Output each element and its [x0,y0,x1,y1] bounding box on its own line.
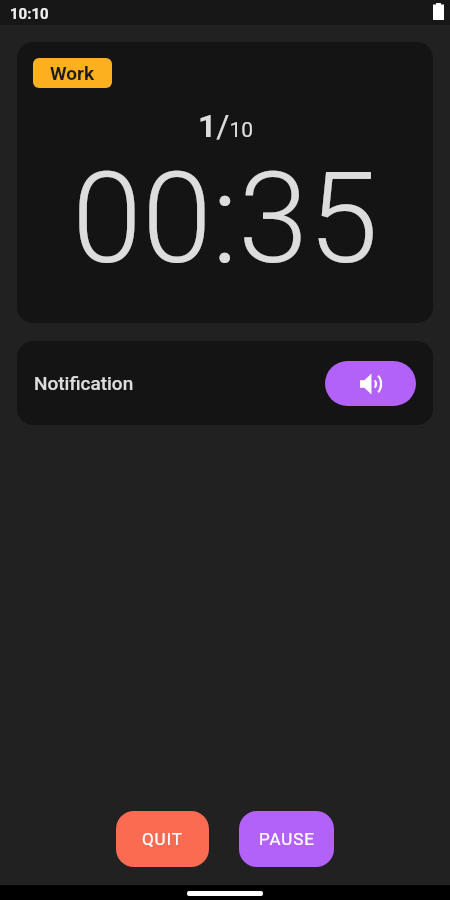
staticText: QUIT [142,829,183,849]
staticText: Notification [34,372,134,394]
staticText: 00:35 [72,145,379,293]
button[interactable]: PAUSE [239,811,334,867]
staticText: 10:10 [10,5,49,23]
staticText: PAUSE [259,829,315,849]
button[interactable]: Work [33,58,112,88]
staticText: 1/10 [198,107,254,145]
staticText: Work [50,62,95,84]
button[interactable]: QUIT [116,811,209,867]
button[interactable]: Sound on [325,361,416,406]
